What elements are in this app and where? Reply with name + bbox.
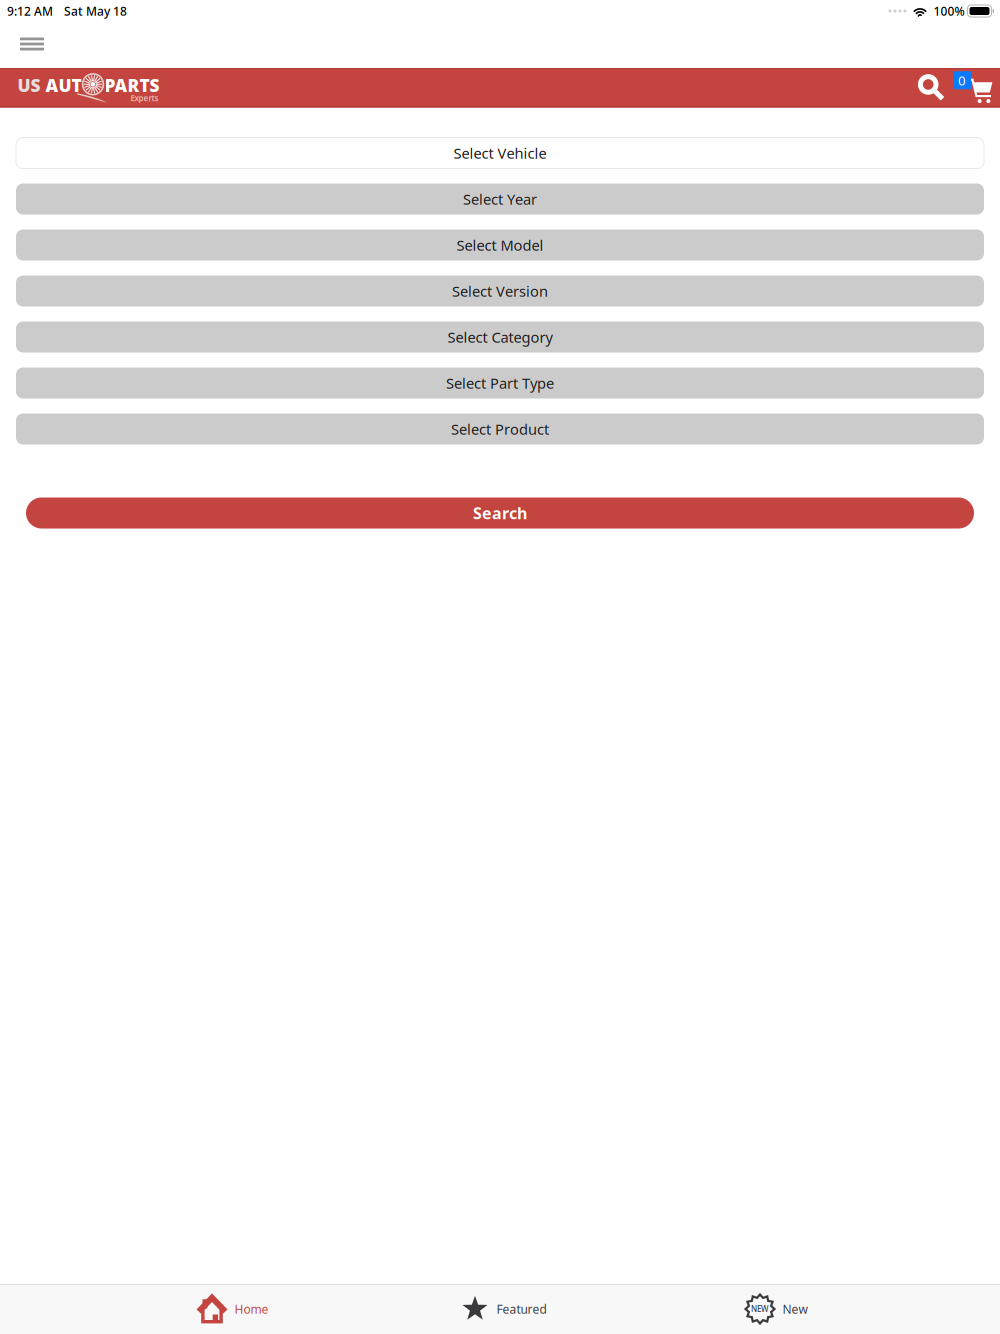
button[interactable]: Search: [26, 497, 974, 528]
button[interactable]: Select Product: [16, 413, 984, 444]
staticText: Featured: [496, 1301, 546, 1317]
staticText: Select Year: [463, 189, 537, 209]
button[interactable]: Select Vehicle: [16, 137, 984, 168]
button[interactable]: NEW: [640, 1284, 912, 1334]
button[interactable]: Select Year: [16, 183, 984, 214]
button[interactable]: Search: [905, 69, 951, 107]
staticText: Select Part Type: [446, 373, 554, 393]
staticText: US: [17, 74, 45, 97]
staticText: 9:12 AM: [7, 3, 53, 19]
staticText: Sat May 18: [64, 3, 127, 19]
staticText: Experts: [130, 93, 158, 103]
staticText: PARTS: [104, 74, 159, 97]
staticText: Search: [473, 502, 527, 524]
button[interactable]: Select Model: [16, 229, 984, 260]
staticText: 0: [958, 71, 966, 89]
staticText: NEW: [751, 1304, 769, 1314]
button[interactable]: Home: [96, 1284, 368, 1334]
staticText: AUT: [45, 74, 81, 97]
staticText: Select Model: [456, 235, 543, 255]
button[interactable]: Select Part Type: [16, 367, 984, 398]
staticText: Select Category: [447, 327, 552, 347]
button[interactable]: Menu: [0, 26, 56, 68]
staticText: Home: [234, 1301, 268, 1317]
button[interactable]: Select Version: [16, 275, 984, 306]
staticText: Select Vehicle: [453, 143, 546, 163]
button[interactable]: US Auto Parts Experts: [0, 69, 161, 107]
staticText: Select Product: [451, 419, 549, 439]
button[interactable]: Cart, 0 items: [951, 69, 994, 107]
staticText: New: [782, 1301, 807, 1317]
button[interactable]: Select Category: [16, 321, 984, 352]
button[interactable]: Featured: [368, 1284, 640, 1334]
staticText: 100%: [933, 3, 964, 19]
staticText: Select Version: [452, 281, 548, 301]
